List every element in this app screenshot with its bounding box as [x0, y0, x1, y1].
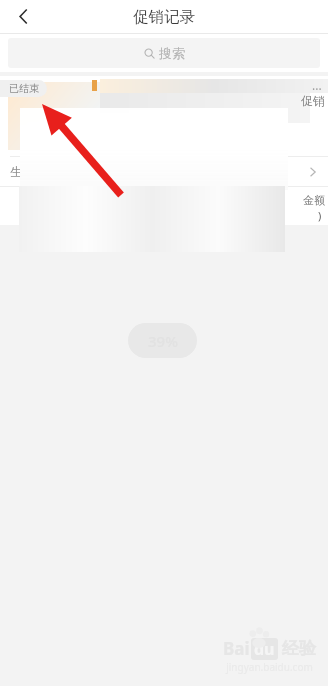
button[interactable]: 39% — [128, 323, 197, 358]
staticText: 经验 — [282, 638, 316, 659]
staticText: 已结束 — [9, 82, 39, 95]
button[interactable]: ... — [312, 77, 322, 93]
staticText: 金额 — [303, 193, 325, 207]
staticText: ) — [318, 208, 322, 223]
staticText: du — [254, 638, 275, 660]
button[interactable] — [0, 187, 106, 225]
button[interactable] — [107, 187, 221, 225]
button[interactable]: ... — [0, 76, 328, 225]
staticText: jingyan.baidu.com — [226, 660, 313, 674]
staticText: 促销 — [301, 93, 325, 108]
staticText: 生 — [10, 164, 22, 179]
button[interactable]: 金额 — [222, 187, 328, 225]
staticText: Bai — [223, 637, 250, 660]
button[interactable]: 生 — [0, 157, 328, 186]
button[interactable]: 搜索 — [8, 38, 320, 68]
button[interactable]: Back — [6, 0, 40, 33]
staticText: 搜索 — [159, 45, 185, 61]
staticText: 促销记录 — [133, 7, 195, 27]
